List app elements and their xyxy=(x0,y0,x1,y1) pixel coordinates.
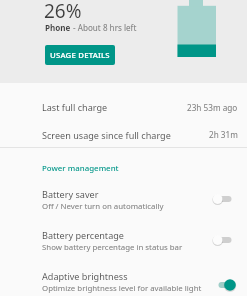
button[interactable]: Screen usage since full charge xyxy=(0,122,247,147)
button[interactable]: Battery saver xyxy=(0,179,247,220)
staticText: Show battery percentage in status bar xyxy=(42,242,183,253)
staticText: Off / Never turn on automatically xyxy=(42,201,164,212)
staticText: 2h 31m xyxy=(209,129,238,140)
staticText: USAGE DETAILS xyxy=(50,50,110,61)
button[interactable]: Last full charge xyxy=(0,92,247,122)
staticText: - About 8 hrs left xyxy=(71,22,137,33)
button[interactable]: Toggle off xyxy=(211,188,235,210)
staticText: 26% xyxy=(44,0,82,24)
staticText: Power management xyxy=(42,163,119,174)
staticText: Phone xyxy=(45,22,71,33)
staticText: Screen usage since full charge xyxy=(42,129,171,141)
staticText: Optimize brightness level for available … xyxy=(42,283,202,294)
button[interactable]: USAGE DETAILS xyxy=(45,45,115,65)
button[interactable]: Toggle off xyxy=(211,229,235,251)
staticText: Adaptive brightness xyxy=(42,270,128,282)
staticText: Last full charge xyxy=(42,101,108,113)
staticText: Battery saver xyxy=(42,188,99,200)
button[interactable]: Battery percentage xyxy=(0,220,247,261)
staticText: Battery percentage xyxy=(42,229,124,241)
button[interactable]: Adaptive brightness xyxy=(0,261,247,296)
staticText: 23h 53m ago xyxy=(187,102,238,113)
button[interactable]: Toggle on xyxy=(211,274,235,296)
